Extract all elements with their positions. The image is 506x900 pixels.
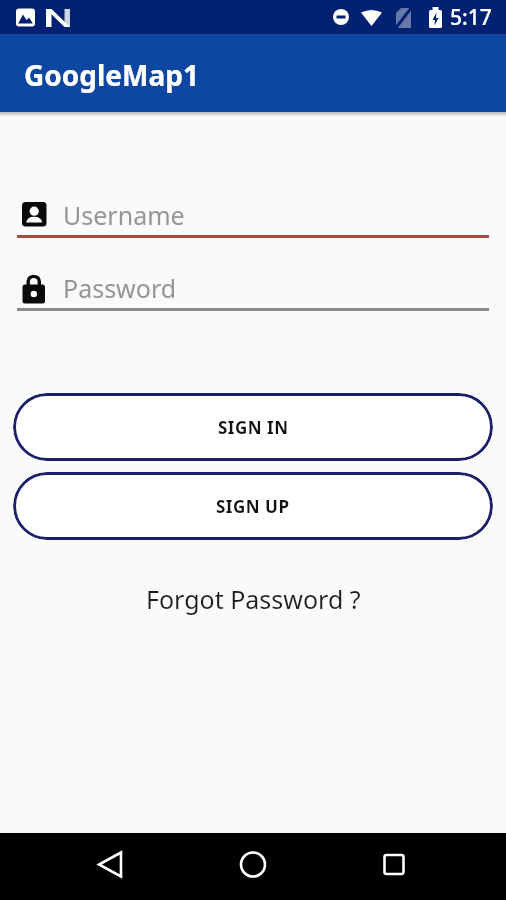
button[interactable] bbox=[168, 833, 337, 900]
button[interactable]: Forgot Password ? bbox=[146, 582, 361, 616]
staticText: 5:17 bbox=[450, 3, 492, 32]
button[interactable]: SIGN UP bbox=[13, 472, 493, 540]
staticText: GoogleMap1 bbox=[24, 56, 199, 94]
staticText: SIGN IN bbox=[218, 416, 289, 439]
button[interactable]: Password bbox=[17, 266, 489, 311]
staticText: Password bbox=[63, 271, 177, 305]
staticText: Forgot Password ? bbox=[146, 582, 361, 616]
button[interactable]: Username bbox=[17, 192, 489, 238]
button[interactable] bbox=[0, 833, 168, 900]
staticText: Username bbox=[63, 198, 185, 232]
button[interactable]: SIGN IN bbox=[13, 393, 493, 461]
staticText: SIGN UP bbox=[216, 495, 290, 518]
button[interactable] bbox=[337, 833, 506, 900]
